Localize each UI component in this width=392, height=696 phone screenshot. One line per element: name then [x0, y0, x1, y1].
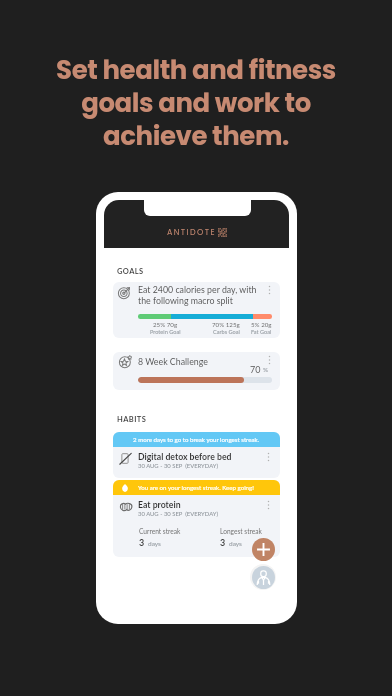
staticText: HABITS — [117, 415, 147, 424]
staticText: 3 — [220, 537, 226, 548]
button[interactable]: 2 more days to go to break your longest … — [113, 432, 280, 478]
staticText: Eat 2400 calories per day, with the foll… — [138, 284, 260, 306]
staticText: Digital detox before bed — [138, 451, 232, 461]
staticText: Set health and fitness goals and work to… — [0, 52, 392, 155]
staticText: Eat protein — [138, 499, 181, 509]
button[interactable]: Profile — [250, 564, 276, 590]
staticText: 70 — [250, 364, 261, 375]
button[interactable]: Eat 2400 calories per day, with the foll… — [113, 282, 280, 338]
staticText: Protein Goal — [150, 328, 181, 335]
staticText: 2 more days to go to break your longest … — [133, 436, 260, 443]
staticText: 8 Week Challenge — [138, 356, 208, 367]
staticText: Current streak — [139, 527, 181, 535]
staticText: 5% 20g — [251, 321, 272, 328]
staticText: 3 — [139, 537, 145, 548]
staticText: Fat Goal — [251, 328, 272, 335]
button[interactable]: You are on your longest streak. Keep goi… — [113, 480, 280, 557]
staticText: Longest streak — [220, 527, 262, 535]
staticText: ANTIDOTE — [167, 227, 216, 238]
staticText: You are on your longest streak. Keep goi… — [138, 484, 254, 491]
staticText: days — [148, 540, 161, 548]
staticText: 70% 125g — [212, 321, 240, 328]
staticText: days — [229, 540, 242, 548]
staticText: % — [263, 366, 269, 374]
button[interactable]: Add — [252, 538, 275, 561]
button[interactable]: 8 Week Challenge — [113, 352, 280, 390]
staticText: 25% 70g — [153, 321, 178, 328]
staticText: Carbs Goal — [213, 328, 240, 335]
staticText: 30 AUG - 30 SEP (EVERYDAY) — [138, 510, 219, 517]
staticText: GOALS — [117, 267, 144, 276]
staticText: 30 AUG - 30 SEP (EVERYDAY) — [138, 462, 219, 469]
